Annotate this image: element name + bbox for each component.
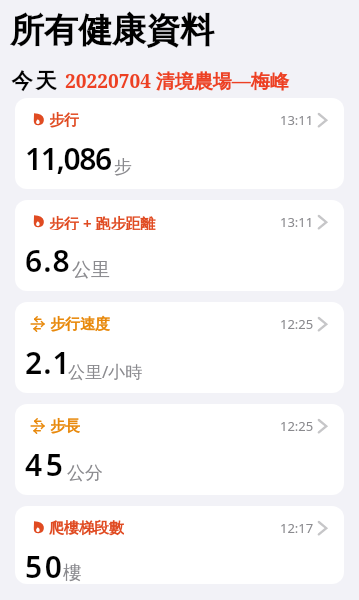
staticText: 步	[114, 156, 132, 179]
button[interactable]: 步行	[15, 98, 344, 189]
staticText: 樓	[63, 561, 82, 584]
staticText: 12:25	[280, 315, 314, 332]
staticText: 13:11	[280, 111, 314, 128]
staticText: 公里	[72, 258, 110, 282]
staticText: 步行速度	[50, 315, 110, 332]
button[interactable]: 爬樓梯段數	[15, 506, 344, 584]
button[interactable]: 步長	[15, 404, 344, 495]
staticText: 12:17	[280, 519, 314, 536]
button[interactable]: 步行速度	[15, 302, 344, 393]
staticText: 步行	[49, 111, 79, 128]
staticText: 2.1	[25, 342, 71, 383]
button[interactable]: 步行 + 跑步距離	[15, 200, 344, 291]
staticText: 公分	[67, 462, 103, 485]
staticText: 11,086	[25, 138, 111, 179]
staticText: 50	[25, 546, 65, 584]
staticText: 爬樓梯段數	[49, 519, 124, 536]
staticText: 12:25	[280, 417, 314, 434]
staticText: 20220704 清境農場—梅峰	[65, 68, 289, 94]
staticText: 所有健康資料	[10, 9, 214, 52]
staticText: 6.8	[25, 240, 71, 281]
staticText: 今天	[10, 68, 58, 94]
staticText: 公里/小時	[68, 360, 143, 383]
staticText: 13:11	[280, 213, 314, 230]
staticText: 步行 + 跑步距離	[49, 213, 156, 230]
staticText: 步長	[50, 417, 80, 434]
staticText: 45	[25, 444, 67, 485]
